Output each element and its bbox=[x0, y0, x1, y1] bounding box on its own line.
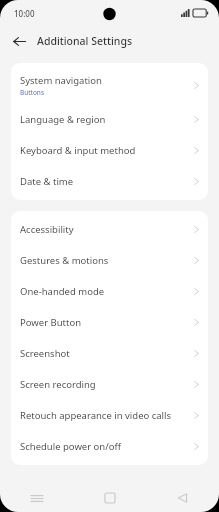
button[interactable]: Language & region bbox=[11, 104, 208, 135]
staticText: Screenshot bbox=[20, 347, 70, 360]
button[interactable]: Schedule power on/off bbox=[11, 431, 208, 462]
staticText: Keyboard & input method bbox=[20, 144, 136, 157]
button[interactable]: One-handed mode bbox=[11, 276, 208, 307]
staticText: Accessibility bbox=[20, 223, 74, 236]
button[interactable]: Accessibility bbox=[11, 214, 208, 245]
button[interactable]: Recents bbox=[0, 484, 73, 512]
staticText: Language & region bbox=[20, 113, 106, 126]
staticText: One-handed mode bbox=[20, 285, 105, 298]
staticText: Buttons bbox=[20, 88, 44, 97]
button[interactable]: Screenshot bbox=[11, 338, 208, 369]
staticText: Schedule power on/off bbox=[20, 440, 122, 453]
button[interactable]: Gestures & motions bbox=[11, 245, 208, 276]
button[interactable]: Power Button bbox=[11, 307, 208, 338]
staticText: Additional Settings bbox=[37, 34, 133, 48]
button[interactable]: Back bbox=[146, 484, 219, 512]
staticText: 10:00 bbox=[14, 8, 35, 19]
button[interactable]: Home bbox=[73, 484, 146, 512]
staticText: Gestures & motions bbox=[20, 254, 109, 267]
staticText: System navigation bbox=[20, 74, 102, 87]
button[interactable]: System navigation bbox=[11, 66, 208, 104]
staticText: Date & time bbox=[20, 175, 74, 188]
staticText: Retouch appearance in video calls bbox=[20, 409, 172, 422]
staticText: Power Button bbox=[20, 316, 82, 329]
button[interactable]: Retouch appearance in video calls bbox=[11, 400, 208, 431]
button[interactable]: Keyboard & input method bbox=[11, 135, 208, 166]
button[interactable]: Back bbox=[9, 31, 30, 52]
button[interactable]: Screen recording bbox=[11, 369, 208, 400]
staticText: Screen recording bbox=[20, 378, 96, 391]
button[interactable]: Date & time bbox=[11, 166, 208, 197]
